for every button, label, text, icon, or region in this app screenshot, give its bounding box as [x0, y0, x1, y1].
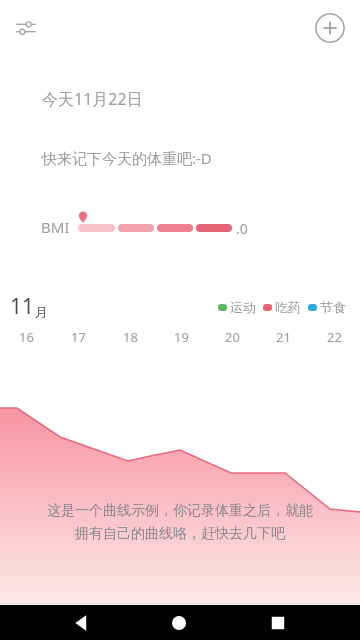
staticText: 21 — [276, 328, 291, 346]
button[interactable]: Back — [64, 606, 98, 640]
staticText: 17 — [71, 328, 86, 346]
button[interactable]: 节食 — [308, 299, 346, 315]
staticText: 节食 — [320, 299, 346, 315]
staticText: 这是一个曲线示例，你记录体重之后，就能 — [47, 502, 313, 520]
button[interactable]: Home — [162, 606, 196, 640]
staticText: 快来记下今天的体重吧:-D — [42, 148, 212, 168]
button[interactable]: 运动 — [218, 299, 256, 315]
staticText: 今天11月22日 — [42, 88, 143, 110]
staticText: 22 — [327, 328, 342, 346]
staticText: 运动 — [230, 299, 256, 315]
staticText: BMI — [41, 217, 70, 237]
staticText: 20 — [225, 328, 240, 346]
button[interactable]: Add record — [313, 11, 347, 45]
staticText: 月 — [35, 304, 48, 320]
staticText: 拥有自己的曲线咯，赶快去几下吧 — [75, 525, 285, 543]
button[interactable]: Settings — [8, 10, 44, 46]
staticText: 11 — [10, 292, 35, 321]
staticText: 16 — [19, 328, 34, 346]
staticText: 吃药 — [275, 299, 301, 315]
staticText: .0 — [236, 219, 248, 238]
staticText: 18 — [123, 328, 138, 346]
button[interactable]: BMI — [0, 205, 360, 245]
staticText: 19 — [174, 328, 189, 346]
button[interactable]: 吃药 — [263, 299, 301, 315]
button[interactable]: Recents — [261, 606, 295, 640]
